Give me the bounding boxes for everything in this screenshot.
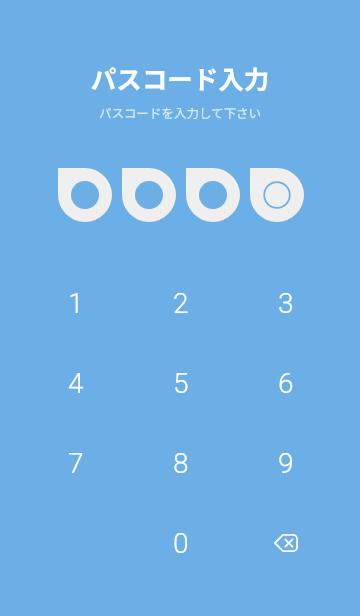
staticText: パスコードを入力して下さい — [0, 103, 360, 121]
staticText: 8 — [173, 447, 189, 480]
staticText: 1 — [68, 287, 84, 320]
button[interactable]: Backspace — [233, 503, 338, 583]
button[interactable]: 6 — [233, 343, 338, 423]
other: Backspace — [262, 519, 310, 567]
button[interactable]: 2 — [128, 263, 233, 343]
staticText: 4 — [68, 367, 84, 400]
staticText: 0 — [173, 527, 189, 560]
staticText: 7 — [68, 447, 84, 480]
staticText: 2 — [173, 287, 189, 320]
button[interactable]: 1 — [23, 263, 128, 343]
button[interactable]: 0 — [128, 503, 233, 583]
button[interactable]: 9 — [233, 423, 338, 503]
staticText: 9 — [278, 447, 294, 480]
button[interactable]: 7 — [23, 423, 128, 503]
staticText: パスコード入力 — [0, 59, 360, 96]
button[interactable]: 8 — [128, 423, 233, 503]
staticText: 5 — [173, 367, 189, 400]
button[interactable]: 5 — [128, 343, 233, 423]
staticText: 3 — [278, 287, 294, 320]
staticText: 6 — [278, 367, 294, 400]
button[interactable]: 3 — [233, 263, 338, 343]
button[interactable]: 4 — [23, 343, 128, 423]
